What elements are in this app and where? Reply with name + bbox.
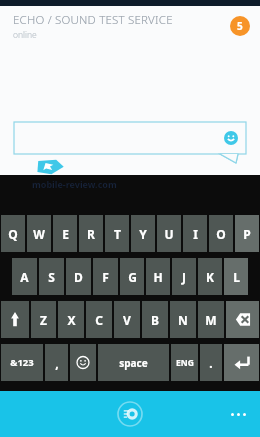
staticText: &123 — [10, 356, 34, 369]
button[interactable]: , — [45, 344, 68, 381]
button[interactable]: J — [172, 258, 196, 295]
staticText: R — [87, 226, 95, 242]
button[interactable]: Emoji — [224, 131, 238, 145]
staticText: G — [128, 269, 137, 285]
staticText: V — [123, 312, 131, 328]
staticText: online — [13, 29, 37, 41]
staticText: P — [243, 226, 251, 242]
staticText: D — [74, 269, 83, 285]
staticText: C — [95, 312, 103, 328]
staticText: X — [67, 312, 76, 328]
button[interactable]: More options — [227, 409, 250, 420]
button[interactable]: G — [120, 258, 144, 295]
button[interactable]: Backspace — [226, 301, 259, 338]
button[interactable]: Emoji — [70, 344, 96, 381]
button[interactable]: L — [224, 258, 248, 295]
staticText: E — [62, 226, 69, 242]
button[interactable]: C — [86, 301, 112, 338]
staticText: ENG — [176, 357, 194, 369]
button[interactable]: S — [39, 258, 64, 295]
button[interactable]: . — [200, 344, 222, 381]
button[interactable]: Enter — [224, 344, 259, 381]
staticText: W — [33, 226, 45, 242]
button[interactable]: Shift — [1, 301, 29, 338]
button[interactable]: O — [209, 215, 233, 252]
staticText: K — [206, 269, 214, 285]
staticText: M — [205, 312, 217, 328]
staticText: I — [193, 226, 198, 242]
staticText: S — [48, 269, 55, 285]
button[interactable]: Attach — [36, 158, 64, 175]
staticText: U — [164, 226, 174, 242]
button[interactable]: K — [198, 258, 222, 295]
staticText: H — [153, 269, 163, 285]
staticText: space — [119, 356, 148, 370]
button[interactable]: T — [105, 215, 129, 252]
staticText: N — [178, 312, 188, 328]
staticText: mobile-review.com — [32, 178, 117, 190]
staticText: B — [151, 312, 159, 328]
button[interactable]: Q — [1, 215, 25, 252]
button[interactable]: Y — [131, 215, 155, 252]
button[interactable]: Z — [31, 301, 56, 338]
button[interactable]: H — [146, 258, 170, 295]
staticText: Q — [8, 226, 18, 242]
button[interactable]: D — [66, 258, 91, 295]
button[interactable]: &123 — [1, 344, 43, 381]
button[interactable]: A — [12, 258, 37, 295]
button[interactable]: N — [170, 301, 196, 338]
button[interactable]: U — [157, 215, 181, 252]
staticText: L — [233, 269, 240, 285]
button[interactable]: F — [93, 258, 118, 295]
button[interactable]: W — [27, 215, 51, 252]
staticText: 5 — [237, 19, 243, 33]
button[interactable]: P — [235, 215, 259, 252]
button[interactable]: 5 unread — [230, 16, 250, 36]
staticText: F — [102, 269, 109, 285]
button[interactable]: ECHO / SOUND TEST SERVICE — [0, 6, 260, 46]
button[interactable]: I — [183, 215, 207, 252]
staticText: ECHO / SOUND TEST SERVICE — [13, 12, 173, 28]
button[interactable]: B — [142, 301, 168, 338]
staticText: A — [20, 269, 29, 285]
button[interactable]: M — [198, 301, 224, 338]
button[interactable]: E — [53, 215, 77, 252]
staticText: J — [182, 269, 186, 285]
button[interactable]: V — [114, 301, 140, 338]
button[interactable]: R — [79, 215, 103, 252]
staticText: Z — [40, 312, 47, 328]
staticText: , — [55, 355, 59, 371]
staticText: Y — [139, 226, 147, 242]
button[interactable]: X — [58, 301, 84, 338]
staticText: T — [114, 226, 121, 242]
button[interactable]: Keyboard — [117, 401, 143, 427]
button[interactable]: ENG — [171, 344, 198, 381]
staticText: O — [216, 226, 226, 242]
button[interactable]: space — [98, 344, 169, 381]
staticText: . — [209, 355, 213, 371]
